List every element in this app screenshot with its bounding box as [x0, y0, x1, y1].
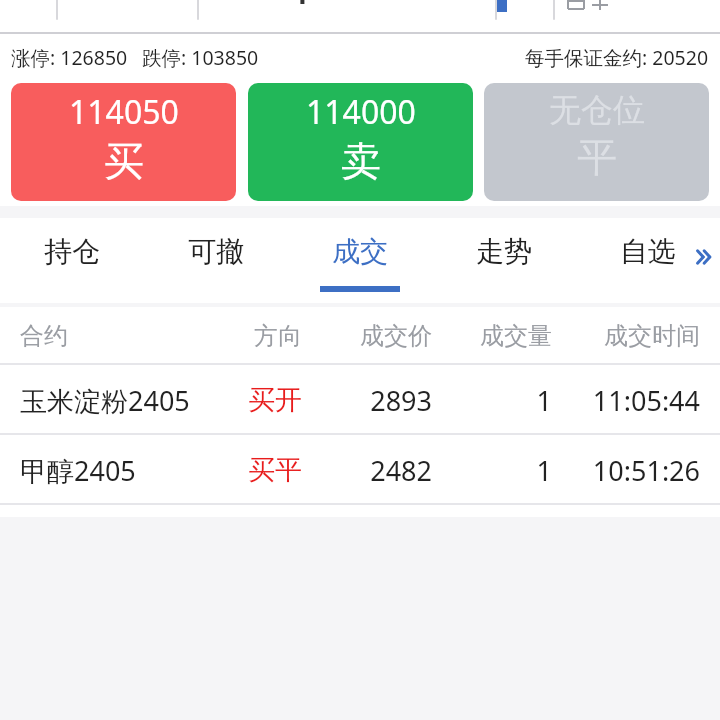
staticText: 买平 — [215, 453, 302, 487]
button[interactable]: 持仓 — [0, 218, 144, 303]
staticText: 成交价 — [302, 321, 432, 351]
staticText: 1 — [432, 452, 552, 489]
staticText: 甲醇2405 — [20, 452, 215, 489]
staticText: 114000 — [306, 90, 416, 134]
staticText: 10:51:26 — [552, 452, 700, 489]
staticText: 玉米淀粉2405 — [20, 382, 215, 419]
staticText: 卖 — [341, 136, 381, 186]
staticText: 买 — [104, 136, 144, 186]
staticText: 2893 — [302, 382, 432, 419]
staticText: 买开 — [215, 383, 302, 417]
staticText: 平 — [577, 132, 617, 182]
staticText: 方向 — [215, 321, 302, 351]
staticText: 合约 — [20, 321, 215, 351]
button[interactable]: 甲醇2405 — [0, 435, 720, 505]
staticText: 2482 — [302, 452, 432, 489]
button[interactable]: 成交 — [288, 218, 432, 303]
button[interactable]: More tabs — [690, 242, 720, 272]
staticText: 可撤 — [188, 234, 244, 269]
staticText: 每手保证金约: 20520 — [525, 44, 709, 71]
button[interactable]: 可撤 — [144, 218, 288, 303]
button[interactable]: 走势 — [432, 218, 576, 303]
staticText: 走势 — [476, 234, 532, 269]
staticText: 成交时间 — [552, 321, 700, 351]
staticText: 成交 — [332, 234, 388, 269]
staticText: 跌停: 103850 — [142, 44, 259, 71]
staticText: 无仓位 — [549, 90, 645, 130]
staticText: 涨停: 126850 — [11, 44, 128, 71]
staticText: 成交量 — [432, 321, 552, 351]
staticText: 114050 — [69, 90, 179, 134]
staticText: 1 — [432, 382, 552, 419]
staticText: 持仓 — [44, 234, 100, 269]
button[interactable]: 114000 — [248, 83, 473, 201]
staticText: 11:05:44 — [552, 382, 700, 419]
button[interactable]: 无仓位 — [484, 83, 709, 201]
button[interactable]: 自选 — [576, 218, 720, 303]
button[interactable]: 玉米淀粉2405 — [0, 365, 720, 435]
staticText: 自选 — [620, 234, 676, 269]
button[interactable]: 114050 — [11, 83, 236, 201]
